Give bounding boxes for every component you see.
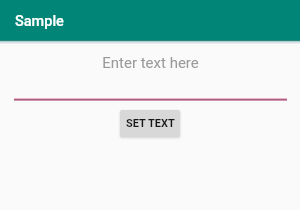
staticText: Enter text here [102, 54, 199, 72]
staticText: Sample [15, 13, 64, 30]
staticText: SET TEXT [126, 117, 175, 130]
button[interactable]: SET TEXT [120, 110, 180, 137]
button[interactable]: Text input field [0, 53, 300, 100]
